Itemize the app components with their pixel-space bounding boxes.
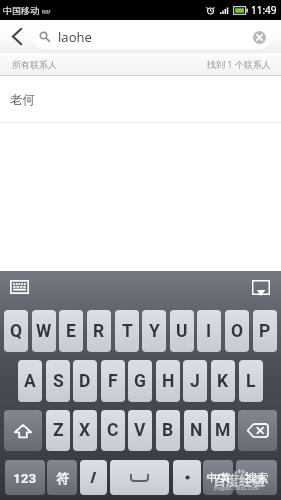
button[interactable]: W	[32, 310, 56, 352]
staticText: T	[122, 321, 133, 342]
button[interactable]: L	[239, 360, 263, 402]
staticText: K	[217, 371, 229, 392]
staticText: X	[79, 420, 91, 441]
button[interactable]: Space	[110, 460, 169, 495]
staticText: A	[24, 371, 36, 392]
button[interactable]: 老何	[0, 76, 281, 123]
button[interactable]	[32, 24, 272, 49]
staticText: 找到 1 个联系人	[207, 58, 271, 70]
staticText: 所有联系人	[12, 59, 57, 70]
button[interactable]: Comma	[80, 460, 107, 495]
button[interactable]: Search	[236, 460, 277, 495]
button[interactable]: N	[184, 410, 208, 451]
button[interactable]: V	[128, 410, 152, 451]
button[interactable]: Back	[0, 20, 32, 53]
button[interactable]: 符	[47, 460, 77, 495]
staticText: I	[206, 321, 212, 342]
button[interactable]: Q	[4, 310, 28, 352]
staticText: Y	[149, 321, 160, 342]
button[interactable]: Backspace	[238, 410, 277, 451]
button[interactable]: D	[73, 360, 97, 402]
staticText: U	[176, 321, 188, 342]
staticText: S	[53, 371, 64, 392]
staticText: F	[108, 371, 118, 392]
staticText: P	[259, 321, 271, 342]
staticText: J	[190, 371, 200, 392]
staticText: 百度经验	[213, 470, 266, 489]
staticText: 中/英	[207, 472, 230, 484]
button[interactable]: B	[156, 410, 180, 451]
staticText: 11:49	[251, 3, 277, 17]
staticText: Z	[53, 420, 64, 441]
button[interactable]: K	[211, 360, 235, 402]
staticText: laohe	[58, 28, 92, 46]
button[interactable]: Hide keyboard	[247, 273, 274, 301]
staticText: 老何	[10, 92, 35, 108]
staticText: V	[134, 420, 146, 441]
button[interactable]: Period	[173, 460, 201, 495]
button[interactable]: Z	[46, 410, 70, 451]
staticText: 123	[13, 470, 37, 486]
button[interactable]: X	[73, 410, 97, 451]
button[interactable]: H	[156, 360, 180, 402]
staticText: 中国移动	[3, 5, 39, 16]
button[interactable]: A	[18, 360, 42, 402]
button[interactable]: P	[253, 310, 277, 352]
button[interactable]: F	[101, 360, 125, 402]
button[interactable]: T	[115, 310, 139, 352]
staticText: R	[93, 321, 105, 342]
button[interactable]: Clear search	[248, 26, 270, 48]
button[interactable]: O	[225, 310, 249, 352]
staticText: M	[215, 420, 231, 441]
staticText: W	[36, 321, 52, 342]
button[interactable]: Y	[142, 310, 166, 352]
staticText: L	[246, 371, 256, 392]
staticText: H	[162, 371, 175, 392]
staticText: 符	[56, 470, 69, 486]
staticText: O	[231, 321, 244, 342]
staticText: B	[162, 420, 174, 441]
button[interactable]: J	[183, 360, 207, 402]
button[interactable]: Shift	[4, 410, 42, 451]
button[interactable]: M	[211, 410, 235, 451]
staticText: 搜索	[245, 470, 269, 485]
button[interactable]: C	[101, 410, 125, 451]
staticText: jingyan.baidu.com	[214, 485, 259, 491]
staticText: G	[134, 371, 146, 392]
button[interactable]: 123	[5, 460, 45, 495]
button[interactable]: G	[128, 360, 152, 402]
staticText: C	[107, 420, 119, 441]
staticText: N	[190, 420, 203, 441]
button[interactable]: R	[87, 310, 111, 352]
staticText: Q	[10, 321, 23, 342]
button[interactable]: Switch input method	[6, 273, 33, 301]
button[interactable]: S	[46, 360, 70, 402]
button[interactable]: U	[170, 310, 194, 352]
staticText: E	[66, 321, 76, 342]
button[interactable]: 中/英	[203, 460, 233, 495]
staticText: D	[79, 371, 91, 392]
button[interactable]: I	[197, 310, 221, 352]
button[interactable]: E	[59, 310, 83, 352]
